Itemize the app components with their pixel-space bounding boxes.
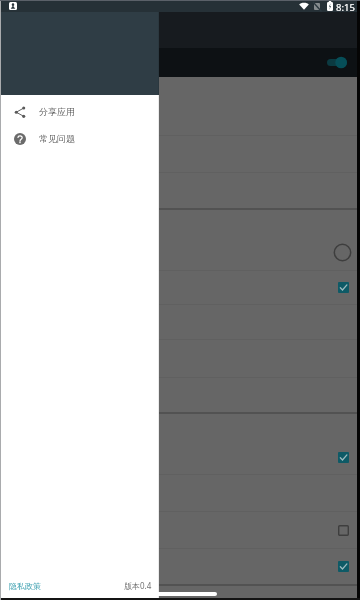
staticText: 分享应用 bbox=[39, 106, 75, 117]
staticText: 隐私政策 bbox=[9, 581, 41, 591]
staticText: 版本0.4 bbox=[124, 580, 152, 591]
button[interactable]: Checkbox checked bbox=[338, 561, 349, 572]
button[interactable]: 分享应用 bbox=[0, 98, 159, 125]
button[interactable] bbox=[0, 378, 360, 412]
button[interactable]: Checkbox checked bbox=[0, 441, 360, 474]
button[interactable]: Checkbox checked bbox=[0, 549, 360, 584]
button[interactable]: Checkbox checked bbox=[338, 452, 349, 463]
button[interactable] bbox=[0, 77, 360, 135]
staticText: 8:15 bbox=[336, 1, 355, 13]
button[interactable] bbox=[0, 173, 360, 208]
button[interactable]: Checkbox unchecked bbox=[338, 525, 349, 536]
button[interactable]: 常见问题 bbox=[0, 125, 159, 152]
button[interactable]: Checkbox checked bbox=[338, 282, 349, 293]
staticText: 常见问题 bbox=[39, 133, 75, 144]
button[interactable]: Checkbox checked bbox=[0, 271, 360, 304]
button[interactable] bbox=[0, 475, 360, 511]
button[interactable]: Radio button bbox=[333, 243, 352, 262]
button[interactable]: Checkbox unchecked bbox=[0, 512, 360, 548]
button[interactable]: 隐私政策 bbox=[9, 581, 41, 591]
button[interactable] bbox=[0, 340, 360, 377]
button[interactable]: Radio button bbox=[0, 235, 360, 270]
button[interactable]: Toggle switch bbox=[327, 56, 347, 69]
button[interactable] bbox=[0, 305, 360, 339]
button[interactable] bbox=[0, 136, 360, 172]
